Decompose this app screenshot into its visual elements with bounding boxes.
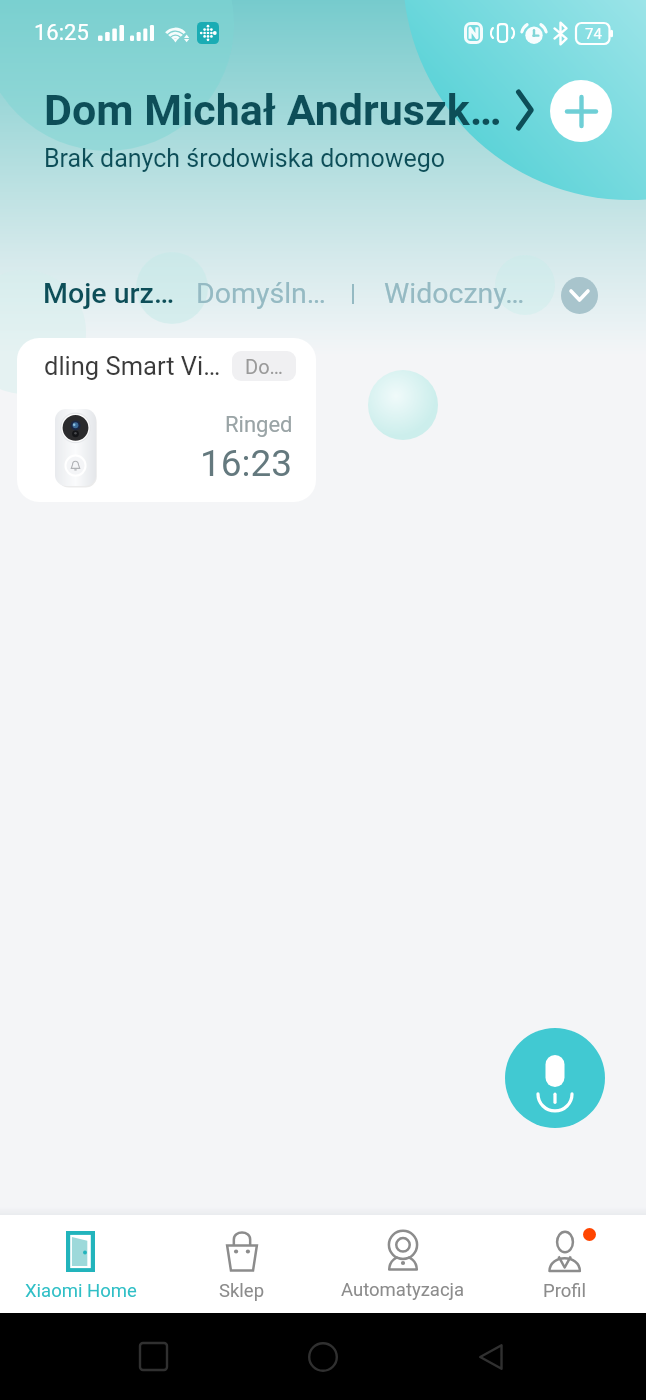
staticText: Sklep [219, 1280, 265, 1302]
staticText: Brak danych środowiska domowego [44, 144, 446, 173]
staticText: Profil [543, 1280, 587, 1302]
staticText: dling Smart Vi… [44, 351, 221, 381]
staticText: 74 [585, 25, 602, 43]
button[interactable]: Sklep [161, 1215, 322, 1302]
button[interactable]: Automatyzacja [322, 1215, 484, 1301]
button[interactable]: Voice assistant [505, 1028, 605, 1128]
button[interactable]: Widoczny… [384, 277, 525, 310]
button[interactable]: Domyśln… [196, 277, 326, 310]
other: New notification [583, 1228, 596, 1241]
staticText: Automatyzacja [341, 1279, 465, 1301]
button[interactable]: dling Smart Vi… [17, 338, 316, 502]
button[interactable]: Expand tabs [561, 277, 598, 314]
staticText: Dom Michał Andruszk… [44, 85, 502, 135]
button[interactable]: Xiaomi Home [0, 1215, 161, 1302]
staticText: Ringed [225, 412, 293, 438]
staticText: Xiaomi Home [25, 1280, 137, 1302]
staticText: 16:25 [34, 20, 89, 46]
button[interactable]: Moje urz… [43, 277, 175, 310]
staticText: Do… [245, 355, 283, 378]
staticText: 16:23 [200, 442, 293, 485]
button[interactable]: Add device [550, 80, 612, 142]
button[interactable]: New notification [484, 1215, 646, 1302]
